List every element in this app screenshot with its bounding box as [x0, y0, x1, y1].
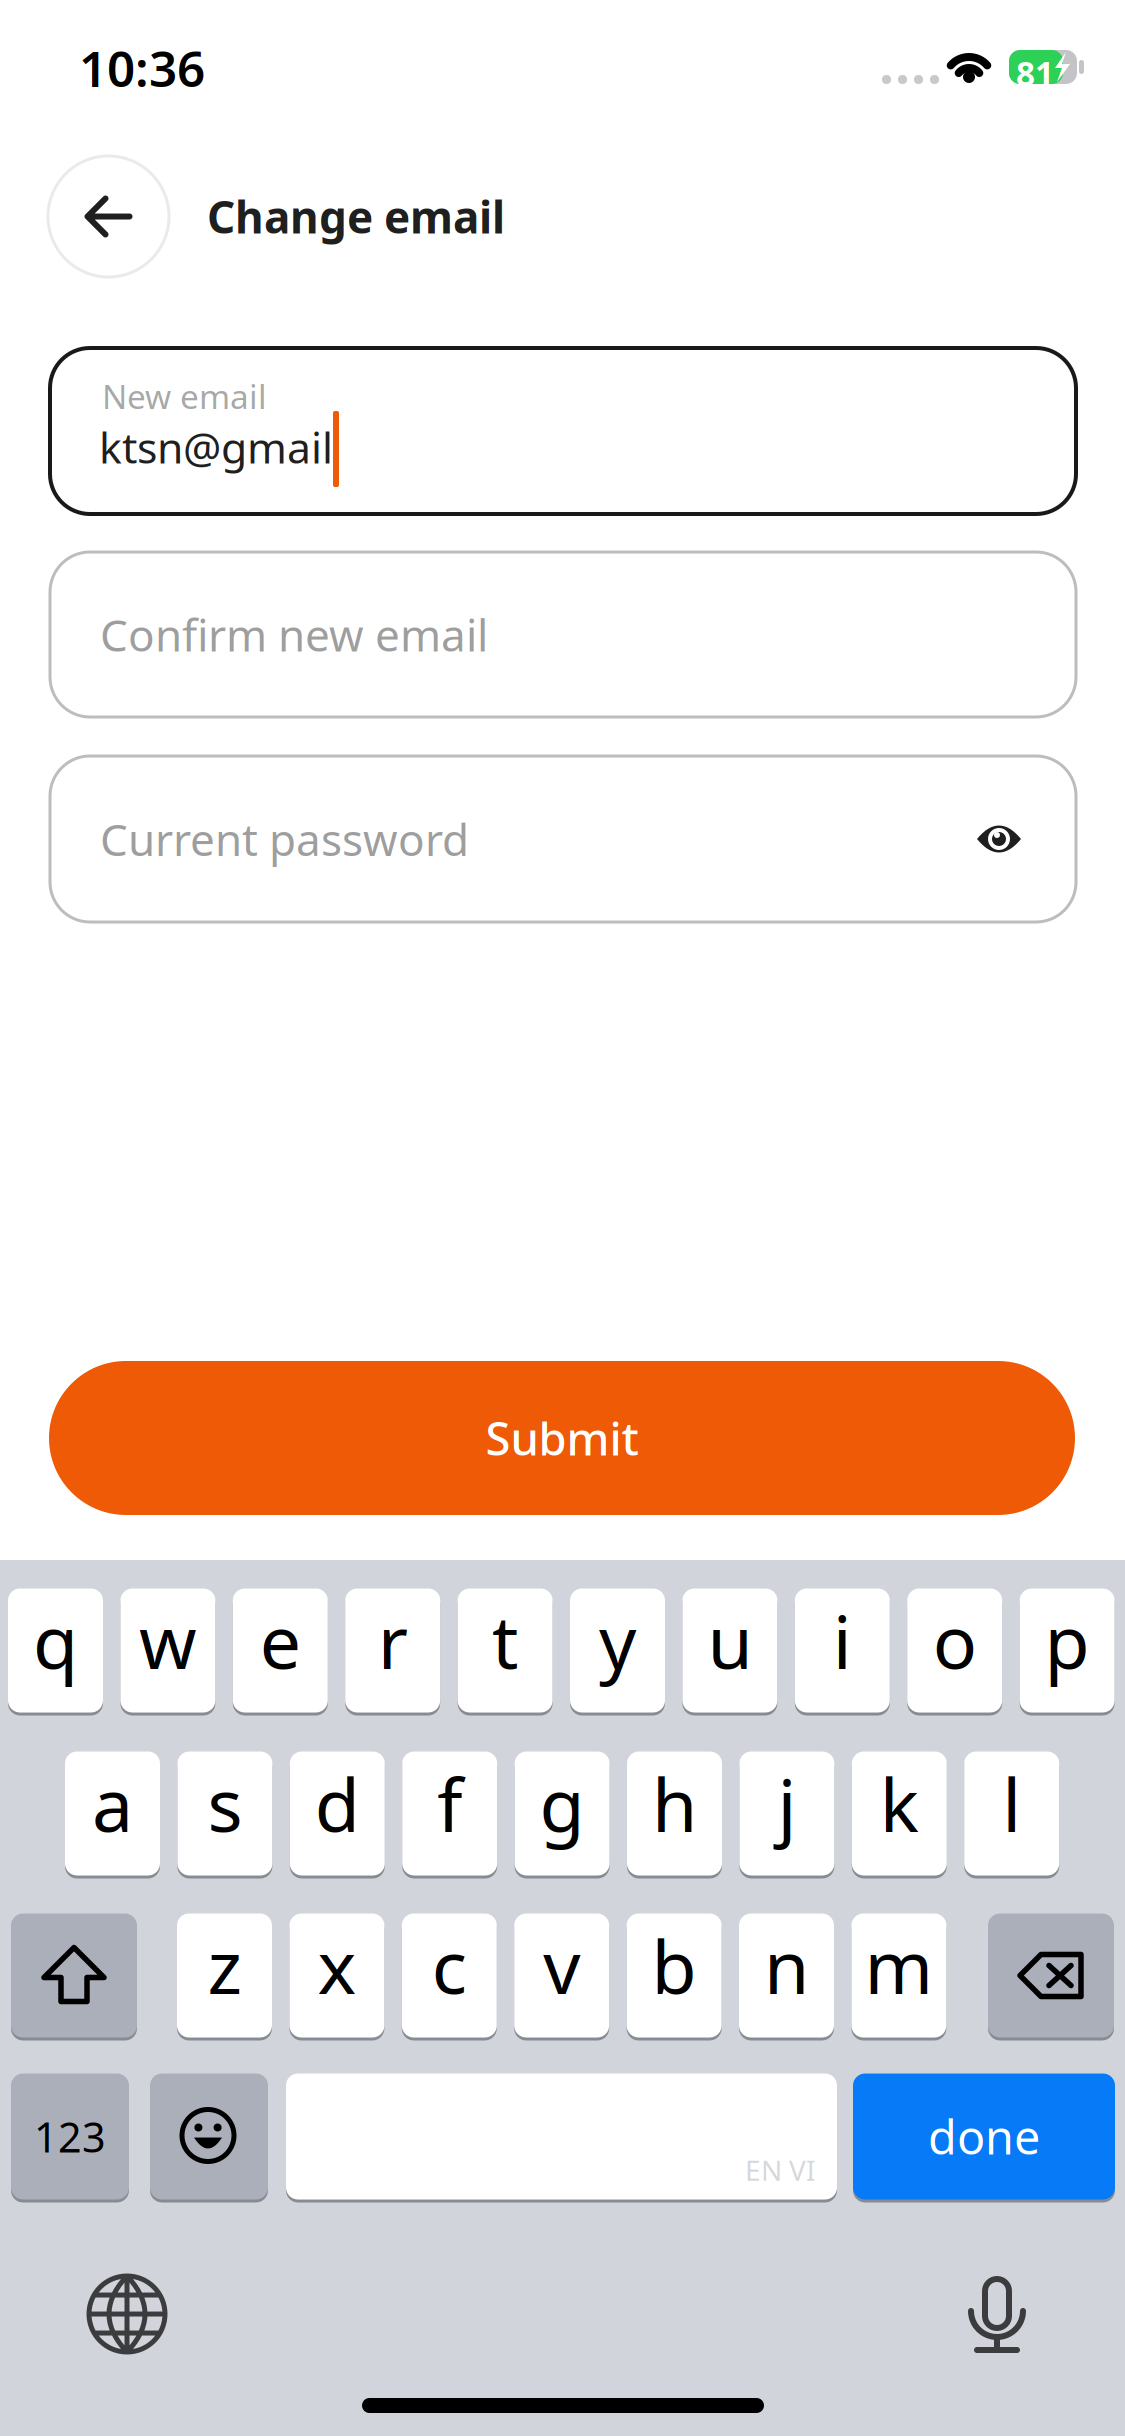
button[interactable]: v	[514, 1912, 609, 2039]
button[interactable]: p	[1020, 1587, 1115, 1714]
staticText: y	[599, 1592, 636, 1689]
button[interactable]: Delete	[988, 1912, 1114, 2039]
staticText: g	[540, 1755, 585, 1852]
staticText: Confirm new email	[100, 605, 488, 664]
staticText: j	[777, 1755, 796, 1852]
button[interactable]: o	[907, 1587, 1002, 1714]
button[interactable]: Show password	[962, 802, 1036, 876]
button[interactable]: j	[739, 1750, 834, 1877]
staticText: z	[207, 1917, 241, 2014]
staticText: EN VI	[745, 2151, 815, 2188]
button[interactable]: m	[851, 1912, 946, 2039]
staticText: ktsn@gmail	[99, 419, 333, 475]
staticText: k	[880, 1755, 919, 1852]
staticText: u	[707, 1592, 752, 1689]
button[interactable]: Dictation	[942, 2261, 1052, 2371]
staticText: i	[833, 1592, 852, 1689]
button[interactable]: r	[345, 1587, 440, 1714]
staticText: New email	[102, 374, 267, 418]
staticText: l	[1002, 1755, 1021, 1852]
staticText: x	[317, 1917, 356, 2014]
staticText: e	[260, 1592, 301, 1689]
staticText: d	[315, 1755, 360, 1852]
button[interactable]: q	[8, 1587, 103, 1714]
button[interactable]: space	[286, 2072, 837, 2201]
button[interactable]: Shift	[11, 1912, 137, 2039]
staticText: q	[33, 1592, 78, 1689]
button[interactable]: h	[627, 1750, 722, 1877]
staticText: n	[764, 1917, 809, 2014]
staticText: 10:36	[79, 35, 205, 100]
button[interactable]: done	[853, 2072, 1115, 2201]
button[interactable]: a	[65, 1750, 160, 1877]
staticText: s	[207, 1755, 242, 1852]
button[interactable]: s	[177, 1750, 272, 1877]
button[interactable]: Submit	[49, 1361, 1075, 1515]
button[interactable]: f	[402, 1750, 497, 1877]
button[interactable]: l	[964, 1750, 1059, 1877]
button[interactable]: d	[290, 1750, 385, 1877]
button[interactable]: z	[177, 1912, 272, 2039]
button[interactable]: i	[795, 1587, 890, 1714]
staticText: Change email	[207, 187, 505, 246]
staticText: b	[652, 1917, 697, 2014]
button[interactable]: n	[739, 1912, 834, 2039]
staticText: Current password	[100, 810, 469, 868]
staticText: a	[92, 1755, 133, 1852]
button[interactable]: Emoji	[150, 2072, 268, 2201]
button[interactable]: u	[682, 1587, 777, 1714]
staticText: Submit	[485, 1408, 638, 1468]
button[interactable]: Back	[48, 156, 169, 277]
button[interactable]: e	[233, 1587, 328, 1714]
staticText: done	[928, 2105, 1040, 2167]
button[interactable]: 123	[11, 2072, 129, 2201]
staticText: 81	[1016, 51, 1054, 95]
button[interactable]: b	[627, 1912, 722, 2039]
staticText: v	[543, 1917, 580, 2014]
button[interactable]: Change keyboard	[72, 2259, 182, 2369]
staticText: 123	[34, 2109, 106, 2164]
staticText: r	[378, 1592, 408, 1689]
button[interactable]: k	[852, 1750, 947, 1877]
staticText: p	[1045, 1592, 1090, 1689]
button[interactable]: t	[458, 1587, 553, 1714]
staticText: c	[432, 1917, 467, 2014]
button[interactable]: c	[402, 1912, 497, 2039]
staticText: h	[652, 1755, 697, 1852]
staticText: m	[864, 1917, 933, 2014]
button[interactable]: x	[289, 1912, 384, 2039]
button[interactable]: y	[570, 1587, 665, 1714]
staticText: f	[437, 1755, 462, 1852]
button[interactable]: w	[120, 1587, 215, 1714]
staticText: o	[933, 1592, 977, 1689]
staticText: w	[139, 1592, 197, 1689]
button[interactable]: g	[515, 1750, 610, 1877]
staticText: t	[492, 1592, 518, 1689]
